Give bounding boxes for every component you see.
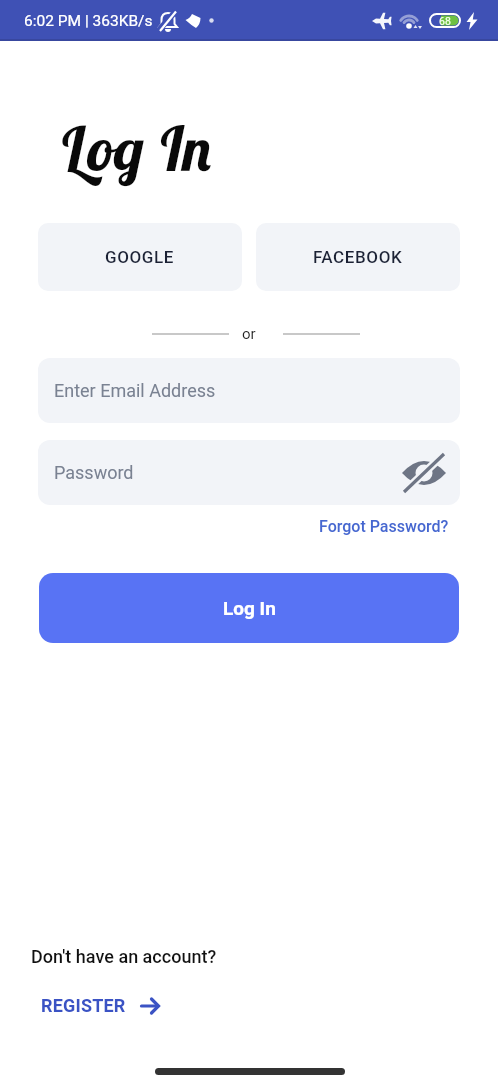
button[interactable]: Forgot Password? <box>319 517 449 536</box>
staticText: Log In <box>223 597 276 619</box>
button[interactable]: GOOGLE <box>38 223 242 291</box>
staticText: GOOGLE <box>105 247 175 267</box>
button[interactable]: Log In <box>39 573 459 643</box>
staticText: Log In <box>59 110 214 186</box>
button[interactable]: Password <box>38 440 460 505</box>
staticText: Don't have an account? <box>31 946 217 967</box>
staticText: FACEBOOK <box>313 247 403 267</box>
staticText: REGISTER <box>41 995 126 1016</box>
staticText: Enter Email Address <box>54 380 216 401</box>
staticText: or <box>242 325 256 343</box>
staticText: 6:02 PM | 363KB/s <box>24 12 153 30</box>
button[interactable]: Enter Email Address <box>38 358 460 423</box>
staticText: 68 <box>439 15 451 27</box>
button[interactable]: REGISTER <box>41 995 161 1016</box>
button[interactable] <box>401 451 447 495</box>
button[interactable]: FACEBOOK <box>256 223 460 291</box>
staticText: Password <box>54 462 134 483</box>
